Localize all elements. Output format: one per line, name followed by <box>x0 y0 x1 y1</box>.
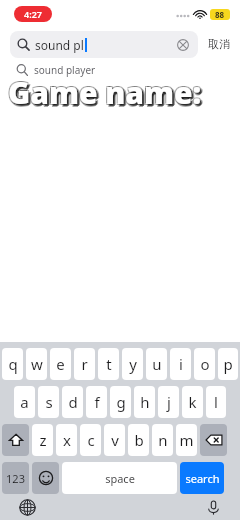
button[interactable]: a <box>14 386 35 418</box>
staticText: Game name: <box>7 71 240 112</box>
button[interactable]: r <box>74 348 95 380</box>
staticText: n <box>158 430 168 450</box>
staticText: v <box>111 430 119 450</box>
staticText: 123 <box>6 471 25 486</box>
button[interactable]: g <box>110 386 131 418</box>
button[interactable]: z <box>32 424 53 456</box>
button[interactable]: Clear text <box>175 37 191 53</box>
staticText: a <box>20 392 29 412</box>
button[interactable]: space <box>62 462 177 494</box>
staticText: sound pl <box>35 37 84 53</box>
button[interactable]: d <box>62 386 83 418</box>
staticText: p <box>223 354 233 374</box>
staticText: g <box>116 392 126 412</box>
button[interactable]: n <box>152 424 173 456</box>
button[interactable]: t <box>98 348 119 380</box>
button[interactable]: q <box>2 348 23 380</box>
button[interactable]: m <box>176 424 197 456</box>
staticText: o <box>200 354 210 374</box>
staticText: c <box>87 430 95 450</box>
staticText: s <box>45 392 53 412</box>
staticText: m <box>179 430 194 450</box>
button[interactable]: b <box>128 424 149 456</box>
button[interactable]: 123 <box>2 462 29 494</box>
staticText: l <box>214 392 218 412</box>
button[interactable]: Shift <box>2 424 29 456</box>
staticText: Game name: <box>9 71 240 112</box>
button[interactable]: p <box>218 348 238 380</box>
button[interactable]: f <box>86 386 107 418</box>
staticText: Game name: <box>9 75 240 116</box>
staticText: Game name: <box>10 74 240 115</box>
staticText: space <box>105 471 135 486</box>
staticText: search <box>185 471 220 486</box>
button[interactable]: k <box>182 386 203 418</box>
button[interactable]: c <box>80 424 101 456</box>
staticText: x <box>63 430 71 450</box>
button[interactable]: sound pl <box>10 31 198 58</box>
staticText: 88 <box>215 9 225 20</box>
button[interactable]: e <box>50 348 71 380</box>
staticText: Game name: <box>11 73 240 114</box>
staticText: t <box>106 354 112 374</box>
staticText: k <box>188 392 197 412</box>
button[interactable]: h <box>134 386 155 418</box>
button[interactable]: u <box>146 348 167 380</box>
button[interactable]: v <box>104 424 125 456</box>
staticText: j <box>167 392 171 412</box>
staticText: e <box>56 354 65 374</box>
staticText: r <box>81 354 88 374</box>
button[interactable]: w <box>26 348 47 380</box>
button[interactable]: Emoji <box>32 462 59 494</box>
staticText: z <box>39 430 47 450</box>
button[interactable]: y <box>122 348 143 380</box>
staticText: y <box>129 354 137 374</box>
button[interactable]: sound player <box>0 60 240 80</box>
button[interactable]: Backspace <box>200 424 227 456</box>
staticText: 4:27 <box>24 8 42 20</box>
staticText: w <box>31 354 43 374</box>
staticText: i <box>179 354 183 374</box>
staticText: Game name: <box>8 72 240 113</box>
button[interactable]: Dictation <box>200 494 226 520</box>
button[interactable]: search <box>180 462 224 494</box>
button[interactable]: o <box>194 348 215 380</box>
button[interactable]: s <box>38 386 59 418</box>
staticText: u <box>152 354 162 374</box>
staticText: Game name: <box>10 74 240 115</box>
staticText: h <box>140 392 150 412</box>
staticText: d <box>68 392 78 412</box>
staticText: Game name: <box>7 73 240 114</box>
button[interactable]: Change keyboard <box>14 494 40 520</box>
button[interactable]: x <box>56 424 77 456</box>
staticText: sound player <box>34 63 96 77</box>
button[interactable]: i <box>170 348 191 380</box>
staticText: b <box>134 430 144 450</box>
button[interactable]: j <box>158 386 179 418</box>
staticText: 取消 <box>208 37 230 51</box>
staticText: f <box>94 392 100 412</box>
button[interactable]: 取消 <box>206 33 232 55</box>
button[interactable]: l <box>206 386 226 418</box>
staticText: q <box>8 354 18 374</box>
